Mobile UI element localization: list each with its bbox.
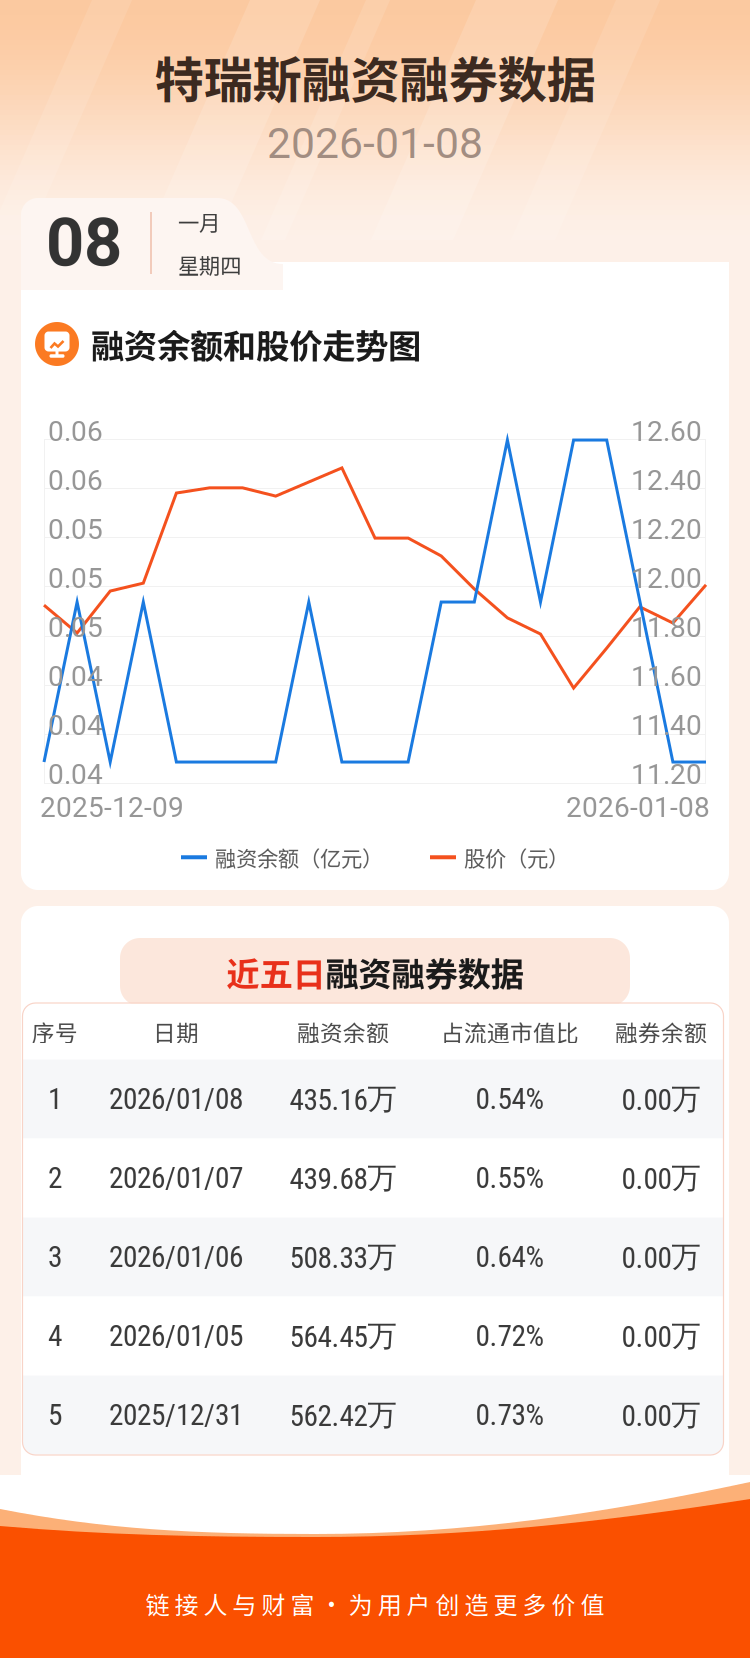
- staticText: 星期四: [178, 249, 241, 280]
- staticText: 439.68万: [289, 1159, 396, 1196]
- staticText: 12.20: [631, 513, 702, 546]
- staticText: 序号: [32, 1015, 78, 1048]
- staticText: 12.60: [631, 415, 702, 448]
- staticText: 占流通市值比: [441, 1015, 579, 1048]
- staticText: 2026/01/05: [109, 1319, 243, 1353]
- staticText: 融券余额: [615, 1015, 707, 1048]
- staticText: 0.55%: [475, 1161, 544, 1195]
- staticText: 近五日: [226, 948, 325, 996]
- staticText: 08: [46, 204, 122, 282]
- staticText: 11.60: [631, 660, 702, 693]
- staticText: 链 接 人 与 财 富 · 为 用 户 创 造 更 多 价 值: [145, 1586, 604, 1621]
- staticText: 融资融券数据: [325, 948, 523, 996]
- staticText: 2025-12-09: [40, 791, 184, 824]
- staticText: 11.20: [631, 758, 702, 791]
- staticText: 0.06: [48, 415, 103, 448]
- staticText: 0.05: [48, 562, 103, 595]
- staticText: 0.05: [48, 513, 103, 546]
- staticText: 4: [48, 1319, 62, 1353]
- staticText: 股价（元）: [464, 842, 569, 873]
- staticText: 0.54%: [475, 1082, 544, 1116]
- staticText: 0.04: [48, 660, 103, 693]
- staticText: 2026-01-08: [267, 118, 483, 168]
- staticText: 1: [48, 1082, 62, 1116]
- staticText: 一月: [178, 206, 220, 237]
- staticText: 0.06: [48, 464, 103, 497]
- staticText: 11.80: [631, 611, 702, 644]
- staticText: 2026/01/07: [109, 1161, 243, 1195]
- staticText: 0.00万: [621, 1317, 700, 1354]
- staticText: 0.05: [48, 611, 103, 644]
- staticText: 12.40: [631, 464, 702, 497]
- staticText: 508.33万: [289, 1238, 396, 1275]
- staticText: 0.73%: [475, 1398, 544, 1432]
- staticText: 0.04: [48, 758, 103, 791]
- staticText: 融资余额和股价走势图: [91, 320, 421, 368]
- staticText: 融资余额（亿元）: [215, 842, 383, 873]
- staticText: 0.00万: [621, 1238, 700, 1275]
- staticText: 0.64%: [475, 1240, 544, 1274]
- staticText: 2026/01/08: [109, 1082, 243, 1116]
- staticText: 0.00万: [621, 1080, 700, 1117]
- staticText: 特瑞斯融资融券数据: [154, 41, 595, 112]
- staticText: 融资余额: [297, 1015, 389, 1048]
- staticText: 2026/01/06: [109, 1240, 243, 1274]
- staticText: 2026-01-08: [566, 791, 710, 824]
- staticText: 12.00: [631, 562, 702, 595]
- staticText: 2: [48, 1161, 62, 1195]
- staticText: 0.00万: [621, 1396, 700, 1433]
- staticText: 3: [48, 1240, 62, 1274]
- staticText: 564.45万: [289, 1317, 396, 1354]
- staticText: 0.04: [48, 709, 103, 742]
- staticText: 562.42万: [289, 1396, 396, 1433]
- staticText: 435.16万: [289, 1080, 396, 1117]
- staticText: 0.72%: [475, 1319, 544, 1353]
- staticText: 5: [48, 1398, 62, 1432]
- staticText: 日期: [153, 1015, 199, 1048]
- staticText: 0.00万: [621, 1159, 700, 1196]
- staticText: 2025/12/31: [109, 1398, 243, 1432]
- staticText: 11.40: [631, 709, 702, 742]
